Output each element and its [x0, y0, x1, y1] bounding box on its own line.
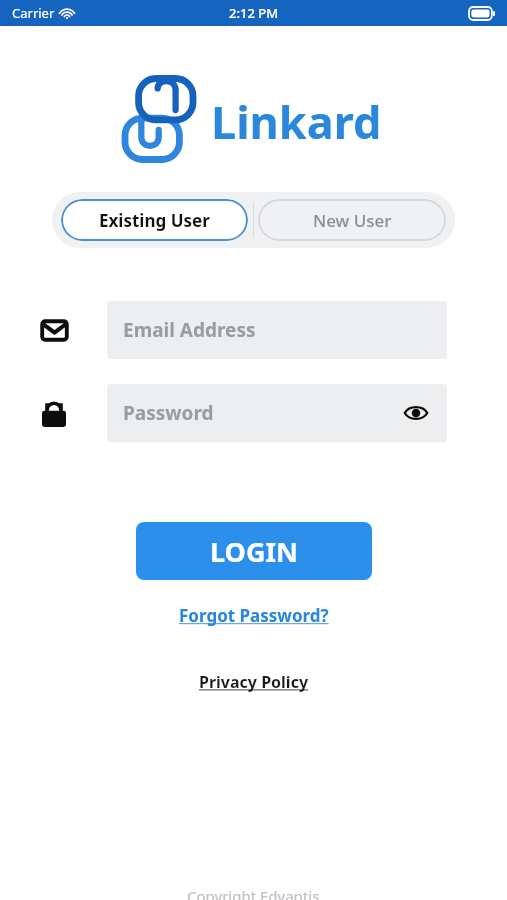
staticText: New User: [313, 209, 392, 232]
button[interactable]: Existing User: [61, 199, 248, 241]
button[interactable]: Privacy Policy: [193, 669, 315, 695]
staticText: Privacy Policy: [199, 671, 309, 693]
staticText: LOGIN: [210, 533, 298, 570]
other: Email: [34, 310, 74, 350]
staticText: Existing User: [99, 209, 210, 232]
button[interactable]: New User: [258, 199, 446, 241]
staticText: Carrier: [12, 4, 55, 22]
staticText: Forgot Password?: [179, 604, 329, 627]
staticText: Copyright Edvantis: [187, 886, 320, 900]
button[interactable]: Email Address: [107, 301, 447, 359]
other: Password: [34, 393, 74, 433]
button[interactable]: Show password: [401, 398, 431, 428]
button[interactable]: Password: [107, 384, 447, 442]
staticText: Linkard: [211, 91, 382, 152]
button[interactable]: Forgot Password?: [173, 602, 335, 629]
staticText: Password: [123, 400, 401, 426]
staticText: 2:12 PM: [229, 4, 279, 22]
button[interactable]: LOGIN: [136, 522, 372, 580]
staticText: Email Address: [123, 317, 431, 343]
